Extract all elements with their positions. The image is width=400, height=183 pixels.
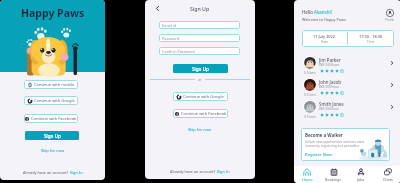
button[interactable]: Chats (374, 166, 400, 183)
button[interactable]: Back (154, 5, 161, 12)
staticText: 0.5 kms (304, 114, 316, 118)
staticText: Home (302, 177, 313, 182)
button[interactable]: 0.5 kms (294, 53, 400, 75)
staticText: Unlock new opportunities and earn extra … (305, 140, 365, 148)
button[interactable]: Home (294, 166, 320, 183)
staticText: Continue with Facebook (31, 116, 77, 121)
button[interactable]: Profile (385, 9, 395, 22)
staticText: Continue with Google (183, 94, 224, 99)
button[interactable]: Email id (159, 21, 240, 29)
staticText: Continue with mobile (34, 82, 75, 87)
button[interactable]: Continue with Facebook (173, 109, 228, 118)
staticText: Happy Paws (21, 6, 85, 20)
staticText: Time (367, 40, 375, 44)
staticText: 0.5 kms (304, 92, 316, 96)
staticText: Jobs (357, 177, 365, 182)
button[interactable]: Continue with mobile (24, 80, 78, 89)
staticText: Continue with Google (34, 98, 75, 103)
button[interactable]: Jobs (347, 166, 374, 183)
staticText: INR 300/hour (319, 107, 340, 111)
button[interactable]: Continue with Facebook (24, 114, 78, 123)
staticText: Profile (385, 18, 395, 22)
staticText: Register Now (305, 152, 332, 158)
staticText: Sign Up (44, 133, 61, 139)
staticText: 0.5 kms (304, 70, 316, 74)
staticText: Hello (302, 9, 314, 15)
staticText: or (198, 77, 202, 82)
staticText: Become a Walker (305, 132, 343, 138)
staticText: Akanshi! (314, 9, 332, 15)
staticText: Date (321, 40, 329, 44)
button[interactable]: 0.5 kms (294, 97, 400, 119)
button[interactable]: Sign In (217, 169, 230, 174)
staticText: Bookings (325, 177, 342, 182)
staticText: Welcome to Happy Paws (302, 17, 346, 22)
staticText: Jim Parker (319, 57, 341, 63)
button[interactable]: Skip for now (41, 148, 65, 153)
button[interactable]: Continue with Google (24, 96, 78, 105)
button[interactable]: Continue with Google (173, 92, 228, 101)
button[interactable]: Sign Up (173, 64, 228, 73)
staticText: INR 300/hour (319, 63, 340, 67)
button[interactable]: 11 July 2022 (302, 30, 347, 47)
staticText: Sign Up (190, 5, 210, 12)
staticText: Email id (162, 23, 177, 28)
button[interactable]: Confirm Password (159, 47, 240, 55)
button[interactable]: 0.5 kms (294, 75, 400, 97)
staticText: 17:30 - 18:30 (359, 34, 383, 39)
button[interactable]: Bookings (320, 166, 347, 183)
staticText: Smith Jones (319, 101, 344, 107)
staticText: 11 July 2022 (313, 34, 336, 39)
staticText: John Jacob (319, 79, 341, 85)
staticText: Already have an account? (170, 169, 217, 174)
button[interactable]: Sign In (70, 170, 83, 175)
staticText: Password (162, 36, 180, 41)
button[interactable]: 17:30 - 18:30 (348, 30, 394, 47)
staticText: INR 300/hour (319, 85, 340, 89)
button[interactable]: Password (159, 34, 240, 42)
staticText: Sign Up (192, 66, 209, 72)
button[interactable]: Skip for now (188, 127, 212, 132)
staticText: Continue with Facebook (181, 111, 227, 116)
button[interactable]: Become a Walker (301, 128, 390, 161)
staticText: Chats (383, 177, 393, 182)
staticText: Confirm Password (162, 49, 195, 54)
staticText: Already have an account? (23, 170, 70, 175)
button[interactable]: Sign Up (25, 131, 79, 140)
